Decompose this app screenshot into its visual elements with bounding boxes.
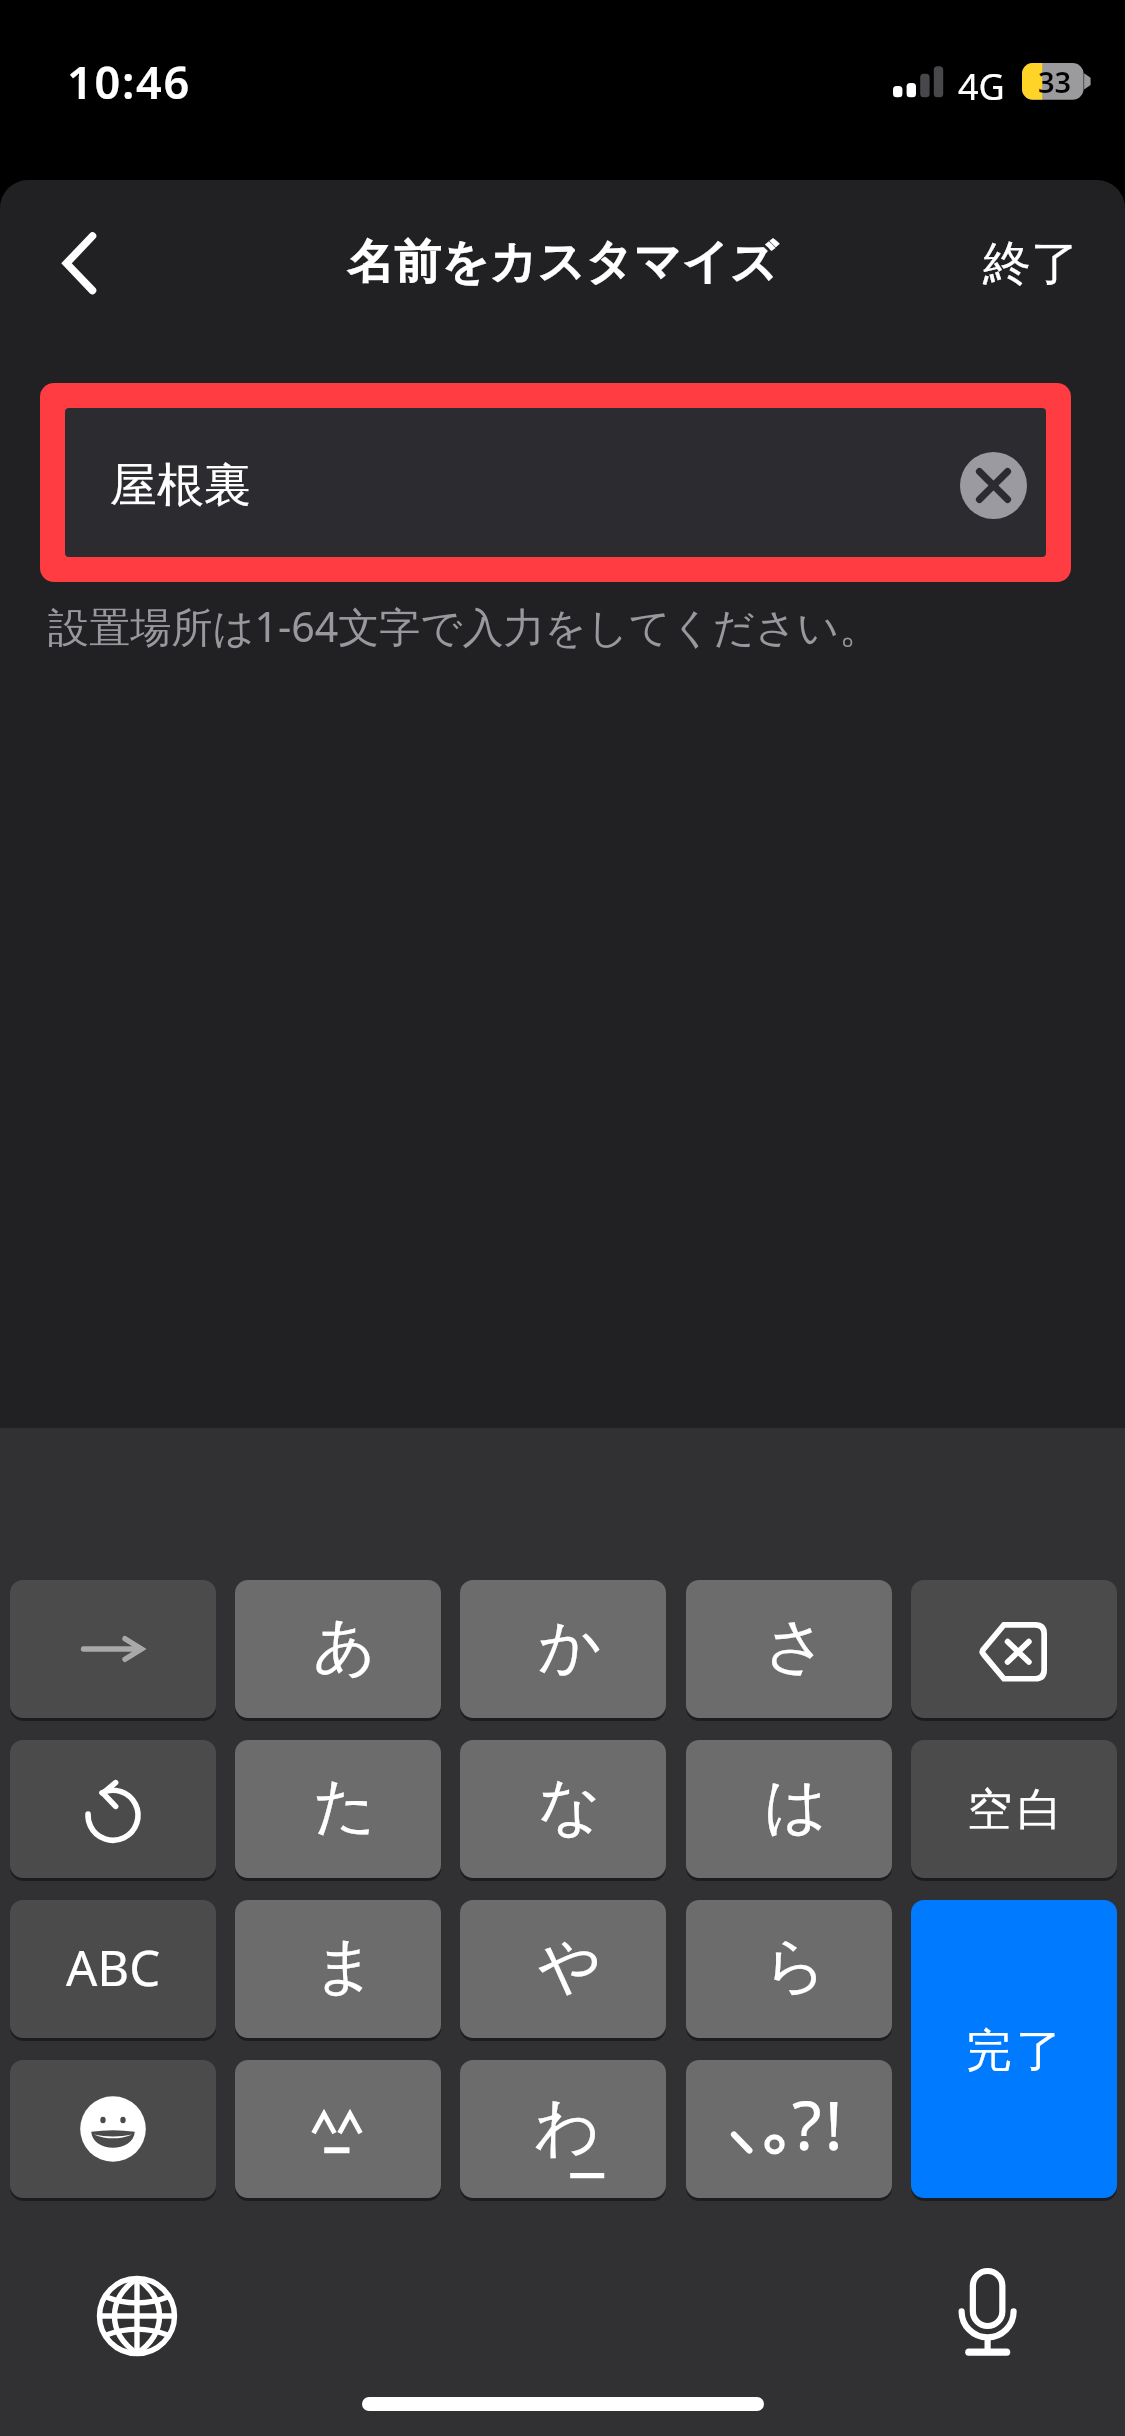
staticText: ABC [66, 1934, 161, 2001]
staticText: 4G [958, 62, 1005, 111]
staticText: か [538, 1607, 602, 1685]
staticText: ま [313, 1927, 377, 2005]
button[interactable]: Dictation [950, 2265, 1030, 2360]
button[interactable]: ?! [686, 2060, 892, 2198]
button[interactable]: ABC [10, 1900, 216, 2038]
button[interactable]: Kaomoji [235, 2060, 441, 2198]
staticText: 終了 [983, 234, 1079, 294]
staticText: 屋根裏 [110, 456, 251, 515]
staticText: は [764, 1767, 828, 1845]
button[interactable]: Back [20, 202, 140, 322]
button[interactable]: 終了 [983, 234, 1079, 294]
button[interactable]: Delete [911, 1580, 1117, 1718]
staticText: 10:46 [67, 51, 191, 112]
button[interactable]: Undo [10, 1740, 216, 1878]
button[interactable]: は [686, 1740, 892, 1878]
staticText: 空白 [965, 1782, 1065, 1839]
staticText: ?! [792, 2077, 846, 2170]
staticText: わ [534, 2086, 601, 2168]
button[interactable]: ま [235, 1900, 441, 2038]
button[interactable]: Clear text [960, 452, 1027, 519]
staticText: た [313, 1767, 377, 1845]
button[interactable]: か [460, 1580, 666, 1718]
staticText: 33 [1038, 62, 1072, 99]
staticText: あ [313, 1607, 377, 1685]
staticText: 設置場所は1-64文字で入力をしてください。 [48, 598, 881, 654]
button[interactable]: 完了 [911, 1900, 1117, 2198]
button[interactable]: わ [460, 2060, 666, 2198]
button[interactable]: 屋根裏 [65, 408, 1046, 557]
button[interactable]: ら [686, 1900, 892, 2038]
staticText: さ [764, 1607, 828, 1685]
button[interactable]: 空白 [911, 1740, 1117, 1878]
button[interactable]: や [460, 1900, 666, 2038]
button[interactable]: Next candidate [10, 1580, 216, 1718]
staticText: ら [764, 1927, 828, 2005]
button[interactable]: さ [686, 1580, 892, 1718]
button[interactable]: た [235, 1740, 441, 1878]
button[interactable]: Emoji [10, 2060, 216, 2198]
staticText: や [538, 1927, 602, 2005]
button[interactable]: Switch keyboard language [93, 2272, 181, 2360]
staticText: 完了 [964, 2023, 1064, 2080]
staticText: 名前をカスタマイズ [347, 233, 778, 292]
button[interactable]: あ [235, 1580, 441, 1718]
staticText: な [538, 1767, 602, 1845]
button[interactable]: な [460, 1740, 666, 1878]
